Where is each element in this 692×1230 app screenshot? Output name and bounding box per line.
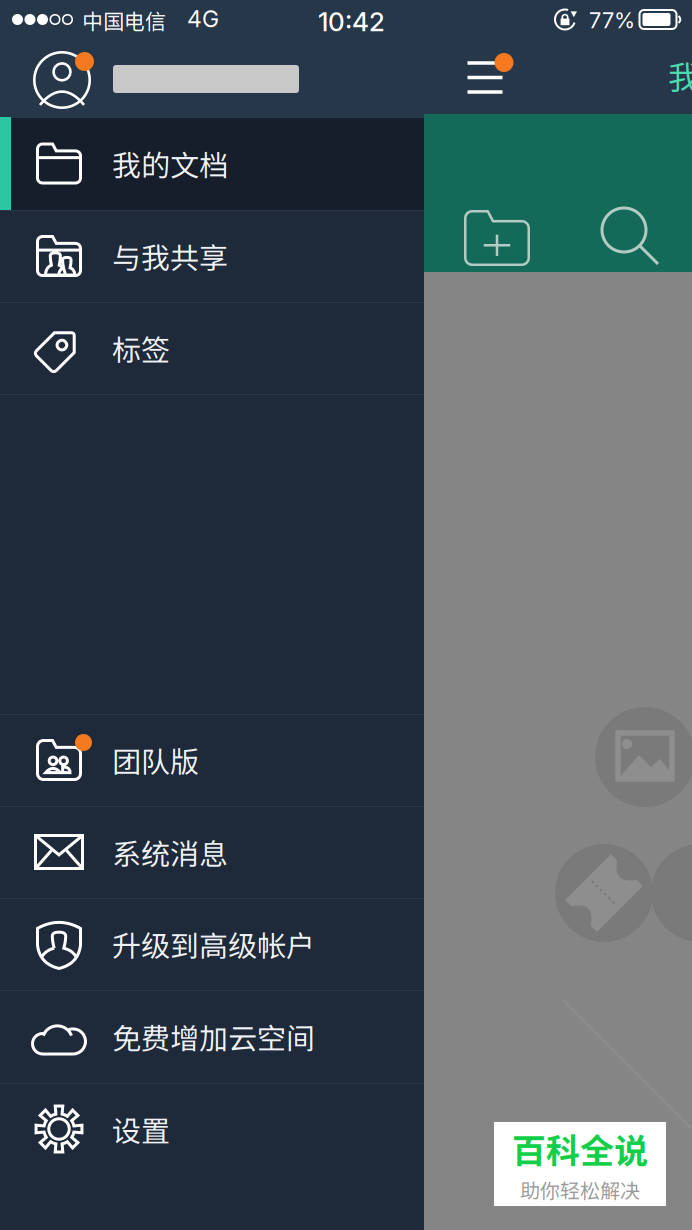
button[interactable]: 与我共享 <box>0 210 424 302</box>
button[interactable]: 标签 <box>0 302 424 394</box>
button[interactable]: 升级到高级帐户 <box>0 898 424 990</box>
staticText: 升级到高级帐户 <box>112 923 315 965</box>
staticText: 与我共享 <box>112 235 228 277</box>
staticText: 免费增加云空间 <box>112 1015 315 1057</box>
staticText: 标签 <box>112 327 170 369</box>
staticText: 77% <box>589 7 635 34</box>
staticText: 我 <box>668 52 692 98</box>
staticText: 助你轻松解决 <box>520 1175 640 1204</box>
staticText: 百科全说 <box>512 1124 648 1173</box>
button[interactable]: 我 <box>668 52 692 98</box>
staticText: 我的文档 <box>112 142 228 184</box>
button[interactable]: New folder <box>464 210 530 266</box>
button[interactable]: 系统消息 <box>0 806 424 898</box>
button[interactable]: Profile <box>31 50 93 110</box>
staticText: 团队版 <box>112 739 199 781</box>
staticText: 系统消息 <box>112 831 228 873</box>
staticText: 设置 <box>112 1108 170 1150</box>
staticText: 中国电信 <box>82 5 166 35</box>
staticText: 10:42 <box>318 6 385 37</box>
button[interactable]: 设置 <box>0 1083 424 1175</box>
button[interactable]: Menu <box>462 57 508 99</box>
staticText: 4G <box>187 5 219 33</box>
button[interactable]: Search <box>600 206 662 268</box>
button[interactable]: 我的文档 <box>0 117 424 210</box>
button[interactable]: 免费增加云空间 <box>0 990 424 1083</box>
button[interactable]: 团队版 <box>0 714 424 806</box>
